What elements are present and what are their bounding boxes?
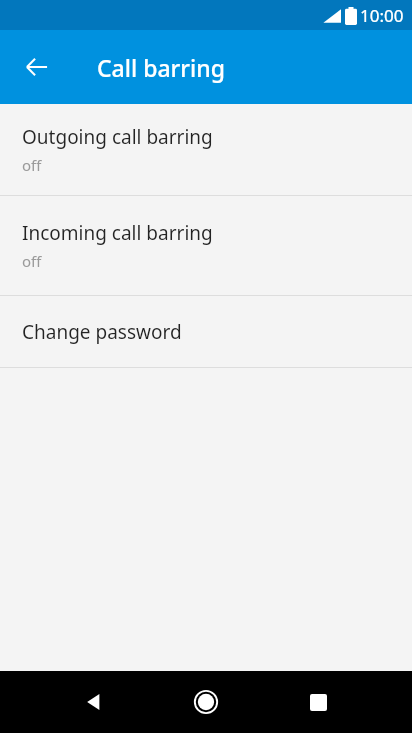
button[interactable]: Back (13, 43, 61, 91)
staticText: Outgoing call barring (22, 124, 213, 150)
staticText: 10:00 (360, 4, 404, 27)
button[interactable]: Recent apps (294, 678, 342, 726)
staticText: off (22, 155, 42, 175)
staticText: Change password (22, 319, 182, 345)
staticText: Incoming call barring (22, 220, 213, 246)
staticText: Call barring (97, 52, 225, 83)
button[interactable]: Incoming call barring (0, 196, 412, 295)
button[interactable]: Back (70, 678, 118, 726)
button[interactable]: Outgoing call barring (0, 104, 412, 195)
staticText: off (22, 251, 42, 271)
button[interactable]: Change password (0, 296, 412, 367)
button[interactable]: Home (182, 678, 230, 726)
